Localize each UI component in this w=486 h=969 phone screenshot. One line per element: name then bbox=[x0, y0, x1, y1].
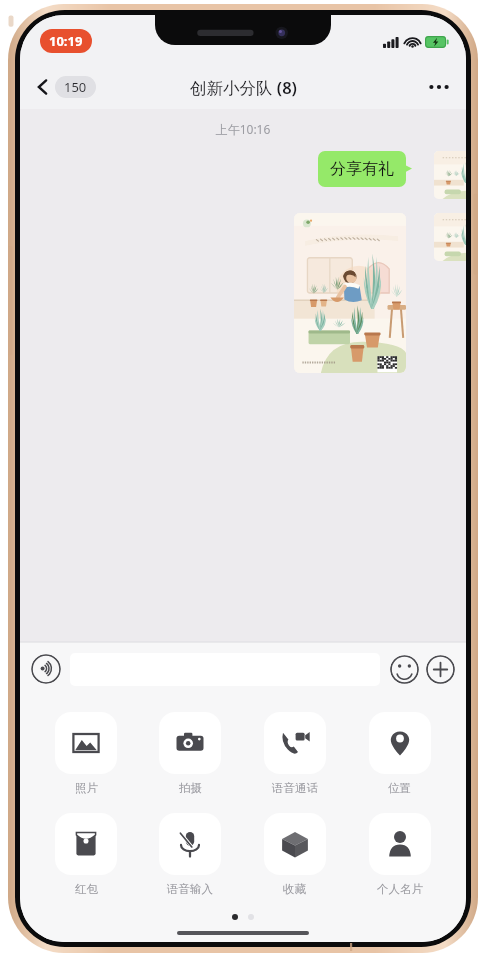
button[interactable]: Shared poster image bbox=[294, 213, 406, 373]
staticText: 分享有礼 bbox=[330, 159, 394, 179]
button[interactable]: 个人名片 bbox=[347, 811, 452, 898]
button[interactable]: 照片 bbox=[34, 710, 138, 797]
staticText: 个人名片 bbox=[377, 882, 423, 896]
button[interactable]: 语音通话 bbox=[242, 710, 347, 797]
staticText: 位置 bbox=[388, 781, 411, 795]
staticText: 红包 bbox=[75, 882, 98, 896]
staticText: 拍摄 bbox=[179, 781, 202, 795]
staticText: 收藏 bbox=[283, 882, 306, 896]
staticText: 照片 bbox=[75, 781, 98, 795]
staticText: 创新小分队 (8) bbox=[190, 76, 297, 99]
staticText: 150 bbox=[64, 78, 87, 96]
button[interactable]: Emoji bbox=[390, 655, 419, 684]
staticText: 语音通话 bbox=[272, 781, 318, 795]
button[interactable]: 收藏 bbox=[242, 811, 347, 898]
button[interactable]: Back, 150 unread bbox=[32, 72, 100, 102]
button[interactable]: 拍摄 bbox=[138, 710, 242, 797]
button[interactable]: 语音输入 bbox=[138, 811, 242, 898]
staticText: 语音输入 bbox=[167, 882, 213, 896]
button[interactable]: More attachments bbox=[426, 655, 455, 684]
button[interactable]: Avatar bbox=[434, 151, 466, 199]
button[interactable]: 分享有礼 bbox=[318, 151, 412, 187]
button[interactable]: 位置 bbox=[347, 710, 452, 797]
button[interactable]: More options bbox=[422, 70, 456, 104]
button[interactable]: 红包 bbox=[34, 811, 138, 898]
staticText: 上午10:16 bbox=[20, 121, 466, 137]
staticText: 10:19 bbox=[49, 32, 83, 50]
button[interactable]: Voice message bbox=[31, 654, 61, 684]
button[interactable]: Avatar bbox=[434, 213, 466, 261]
